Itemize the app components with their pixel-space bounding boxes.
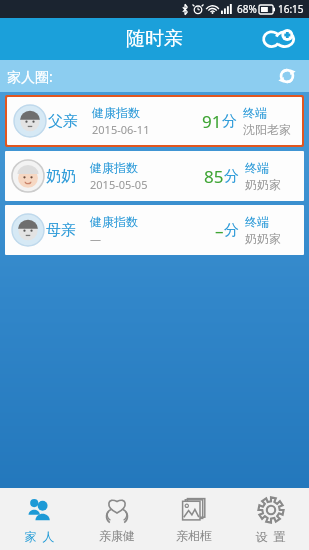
button[interactable]: 亲相框 xyxy=(155,488,232,550)
staticText: 亲相框 xyxy=(176,528,212,543)
staticText: 终端 xyxy=(245,160,269,175)
staticText: 母亲 xyxy=(46,221,76,240)
staticText: 健康指数 xyxy=(90,160,138,175)
staticText: 91 xyxy=(202,110,222,133)
staticText: 家 人 xyxy=(24,528,55,544)
staticText: 68% xyxy=(237,2,257,16)
staticText: 随时亲 xyxy=(126,27,183,51)
button[interactable]: 设 置 xyxy=(232,488,309,550)
staticText: 85 xyxy=(204,165,224,188)
button[interactable]: 刷新 xyxy=(273,62,301,90)
button[interactable]: 家 人 xyxy=(0,488,78,550)
button[interactable]: 父亲 xyxy=(7,97,302,145)
staticText: 家人圈: xyxy=(7,67,53,86)
staticText: 父亲 xyxy=(48,112,78,131)
staticText: 终端 xyxy=(245,214,269,229)
staticText: 16:15 xyxy=(278,2,304,16)
staticText: 分 xyxy=(224,221,239,240)
staticText: 沈阳老家 xyxy=(243,122,291,137)
staticText: 亲康健 xyxy=(99,528,135,543)
staticText: 健康指数 xyxy=(90,214,138,229)
button[interactable]: 母亲 xyxy=(5,205,304,255)
staticText: 奶奶家 xyxy=(245,177,281,192)
staticText: 终端 xyxy=(243,105,267,120)
staticText: 分 xyxy=(222,112,237,131)
button[interactable]: 亲康健 xyxy=(78,488,155,550)
staticText: 设 置 xyxy=(255,528,286,544)
staticText: 奶奶家 xyxy=(245,231,281,246)
staticText: 健康指数 xyxy=(92,105,140,120)
button[interactable]: 奶奶 xyxy=(5,151,304,201)
staticText: 分 xyxy=(224,167,239,186)
staticText: 2015-05-05 xyxy=(90,177,148,192)
button[interactable]: 添加联系人 xyxy=(259,19,299,59)
staticText: – xyxy=(215,219,224,242)
staticText: 奶奶 xyxy=(46,167,76,186)
staticText: — xyxy=(90,231,101,246)
staticText: 2015-06-11 xyxy=(92,122,150,137)
